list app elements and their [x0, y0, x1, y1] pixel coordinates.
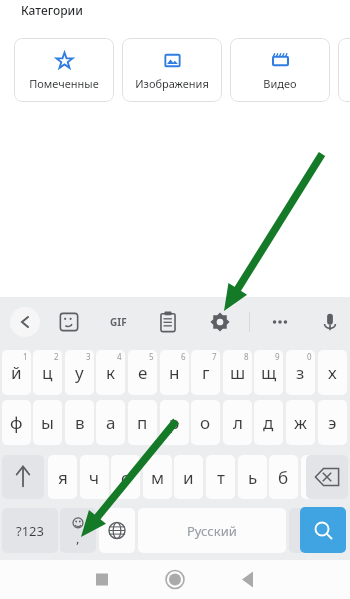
- button[interactable]: GIF: [102, 306, 134, 338]
- button[interactable]: Изображения: [122, 38, 222, 102]
- staticText: м: [151, 466, 165, 489]
- button[interactable]: к: [96, 350, 125, 395]
- button[interactable]: л: [223, 400, 252, 445]
- button[interactable]: Помеченные: [14, 38, 114, 102]
- button[interactable]: с: [111, 455, 140, 499]
- staticText: Помеченные: [29, 76, 99, 91]
- staticText: Видео: [263, 76, 297, 91]
- staticText: н: [169, 361, 180, 384]
- button[interactable]: Back: [218, 560, 278, 599]
- staticText: р: [169, 411, 180, 434]
- staticText: г: [202, 361, 210, 384]
- staticText: щ: [261, 361, 277, 384]
- button[interactable]: р: [160, 400, 189, 445]
- staticText: 7: [212, 351, 217, 362]
- button[interactable]: м: [143, 455, 172, 499]
- button[interactable]: о: [191, 400, 220, 445]
- staticText: с: [121, 466, 130, 489]
- button[interactable]: ч: [80, 455, 109, 499]
- staticText: ,: [76, 529, 80, 547]
- button[interactable]: э: [318, 400, 347, 445]
- button[interactable]: и: [174, 455, 203, 499]
- staticText: е: [138, 361, 148, 384]
- button[interactable]: Home: [145, 560, 205, 599]
- button[interactable]: н: [160, 350, 189, 395]
- staticText: х: [328, 361, 337, 384]
- staticText: Русский: [187, 522, 237, 540]
- staticText: а: [106, 411, 116, 434]
- button[interactable]: ?123: [2, 508, 58, 553]
- staticText: и: [183, 466, 194, 489]
- button[interactable]: ф: [2, 400, 31, 445]
- staticText: д: [263, 411, 274, 434]
- button[interactable]: щ: [254, 350, 283, 395]
- button[interactable]: Backspace: [306, 455, 348, 499]
- button[interactable]: Emoji: [60, 508, 96, 553]
- staticText: 0: [307, 351, 312, 362]
- staticText: ь: [248, 466, 258, 489]
- staticText: т: [217, 466, 225, 489]
- button[interactable]: х: [318, 350, 347, 395]
- staticText: ж: [294, 411, 307, 434]
- staticText: о: [200, 411, 211, 434]
- button[interactable]: д: [254, 400, 283, 445]
- button[interactable]: Back: [10, 307, 40, 337]
- staticText: Изображения: [135, 76, 209, 91]
- button[interactable]: Stickers: [53, 306, 85, 338]
- button[interactable]: .: [289, 508, 317, 553]
- button[interactable]: Search: [300, 507, 346, 553]
- staticText: 8: [244, 351, 249, 362]
- staticText: ю: [309, 466, 323, 489]
- button[interactable]: ж: [286, 400, 315, 445]
- button[interactable]: ю: [301, 455, 330, 499]
- staticText: ы: [41, 411, 54, 434]
- staticText: в: [75, 411, 85, 434]
- staticText: Категории: [21, 2, 83, 18]
- button[interactable]: Видео: [230, 38, 330, 102]
- button[interactable]: т: [206, 455, 235, 499]
- staticText: б: [278, 466, 289, 489]
- button[interactable]: г: [191, 350, 220, 395]
- button[interactable]: б: [269, 455, 298, 499]
- staticText: 9: [275, 351, 280, 362]
- button[interactable]: в: [65, 400, 94, 445]
- button[interactable]: Clipboard: [152, 306, 184, 338]
- button[interactable]: е: [128, 350, 157, 395]
- staticText: к: [106, 361, 116, 384]
- staticText: 5: [149, 351, 154, 362]
- button[interactable]: Recents: [72, 560, 132, 599]
- staticText: у: [75, 361, 84, 384]
- button[interactable]: п: [128, 400, 157, 445]
- button[interactable]: More: [264, 306, 296, 338]
- staticText: э: [328, 411, 337, 434]
- staticText: й: [11, 361, 22, 384]
- staticText: п: [137, 411, 148, 434]
- button[interactable]: Change language: [99, 508, 135, 553]
- button[interactable]: ш: [223, 350, 252, 395]
- button[interactable]: ь: [238, 455, 267, 499]
- button[interactable]: Voice input: [314, 306, 346, 338]
- staticText: 1: [23, 351, 28, 362]
- staticText: я: [58, 466, 68, 489]
- staticText: 3: [86, 351, 91, 362]
- button[interactable]: ы: [33, 400, 62, 445]
- button[interactable]: Shift: [2, 455, 44, 499]
- button[interactable]: Settings: [204, 306, 236, 338]
- button[interactable]: а: [96, 400, 125, 445]
- button[interactable]: ц: [33, 350, 62, 395]
- staticText: ?123: [16, 522, 44, 540]
- staticText: з: [296, 361, 305, 384]
- staticText: GIF: [110, 315, 127, 329]
- button[interactable]: з: [286, 350, 315, 395]
- staticText: 4: [117, 351, 122, 362]
- staticText: ш: [230, 361, 246, 384]
- button[interactable]: й: [2, 350, 31, 395]
- button[interactable]: Д: [338, 38, 350, 102]
- staticText: 2: [54, 351, 59, 362]
- button[interactable]: у: [65, 350, 94, 395]
- button[interactable]: Русский: [138, 508, 286, 553]
- staticText: л: [233, 411, 243, 434]
- staticText: ч: [89, 466, 100, 489]
- button[interactable]: я: [48, 455, 77, 499]
